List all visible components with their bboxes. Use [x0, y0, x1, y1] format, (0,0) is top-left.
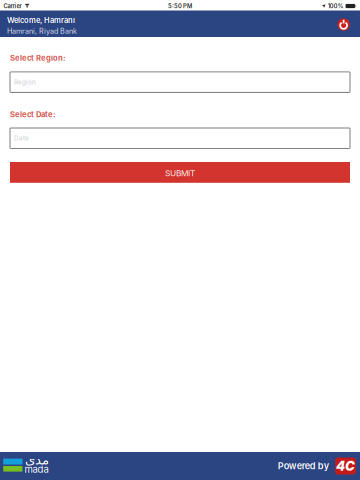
staticText: Carrier — [4, 3, 22, 9]
staticText: مدى — [24, 452, 48, 468]
staticText: Region — [14, 78, 36, 86]
button[interactable]: Region — [10, 72, 350, 92]
staticText: Powered by — [278, 460, 329, 471]
staticText: Hamrani, Riyad Bank — [7, 27, 77, 35]
staticText: Welcome, Hamrani — [7, 16, 75, 25]
staticText: 5:50 PM — [168, 3, 192, 9]
staticText: 100% — [328, 3, 344, 9]
button[interactable]: SUBMIT — [10, 162, 350, 183]
staticText: Date — [14, 134, 29, 142]
staticText: mada — [24, 463, 48, 475]
staticText: SUBMIT — [165, 168, 195, 178]
staticText: Select Date: — [10, 110, 56, 119]
button[interactable]: 4C — [335, 457, 356, 474]
button[interactable]: Log out — [333, 14, 353, 34]
staticText: Select Region: — [10, 53, 66, 63]
staticText: 4C — [336, 458, 355, 474]
button[interactable]: Date — [10, 128, 350, 148]
